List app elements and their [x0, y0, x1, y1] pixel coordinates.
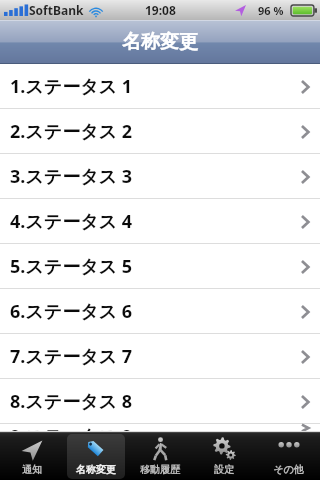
button[interactable]: 6.ステータス 6 [0, 289, 320, 334]
button[interactable]: 4.ステータス 4 [0, 199, 320, 244]
staticText: 名称変更 [122, 30, 198, 54]
button[interactable]: 設定 [192, 432, 256, 480]
other: 通知 [19, 436, 45, 462]
staticText: 設定 [214, 463, 234, 476]
staticText: 96 % [258, 3, 284, 18]
staticText: 9.ステータス 9 [10, 424, 133, 432]
button[interactable]: 9.ステータス 9 [0, 424, 320, 432]
staticText: 4.ステータス 4 [10, 209, 133, 234]
button[interactable]: 3.ステータス 3 [0, 154, 320, 199]
button[interactable]: 移動履歴 [128, 432, 192, 480]
other: 移動履歴 [147, 436, 173, 462]
button[interactable]: 7.ステータス 7 [0, 334, 320, 379]
staticText: 1.ステータス 1 [10, 74, 133, 99]
button[interactable]: その他 [256, 432, 320, 480]
staticText: 19:08 [145, 2, 176, 18]
staticText: 移動履歴 [140, 463, 180, 476]
staticText: 5.ステータス 5 [10, 254, 133, 279]
staticText: 8.ステータス 8 [10, 389, 133, 414]
staticText: 6.ステータス 6 [10, 299, 133, 324]
other: 設定 [211, 436, 237, 462]
staticText: SoftBank [29, 2, 84, 18]
button[interactable]: 通知 [0, 432, 64, 480]
button[interactable]: 1.ステータス 1 [0, 64, 320, 109]
other: その他 [276, 436, 302, 462]
button[interactable]: 5.ステータス 5 [0, 244, 320, 289]
button[interactable]: 名称変更 [64, 432, 128, 480]
staticText: 名称変更 [76, 463, 116, 476]
button[interactable]: 2.ステータス 2 [0, 109, 320, 154]
button[interactable]: 8.ステータス 8 [0, 379, 320, 424]
staticText: 3.ステータス 3 [10, 164, 133, 189]
staticText: 2.ステータス 2 [10, 119, 133, 144]
other: 名称変更 [83, 436, 109, 462]
staticText: 通知 [22, 463, 42, 476]
staticText: その他 [273, 463, 304, 476]
staticText: 7.ステータス 7 [10, 344, 133, 369]
